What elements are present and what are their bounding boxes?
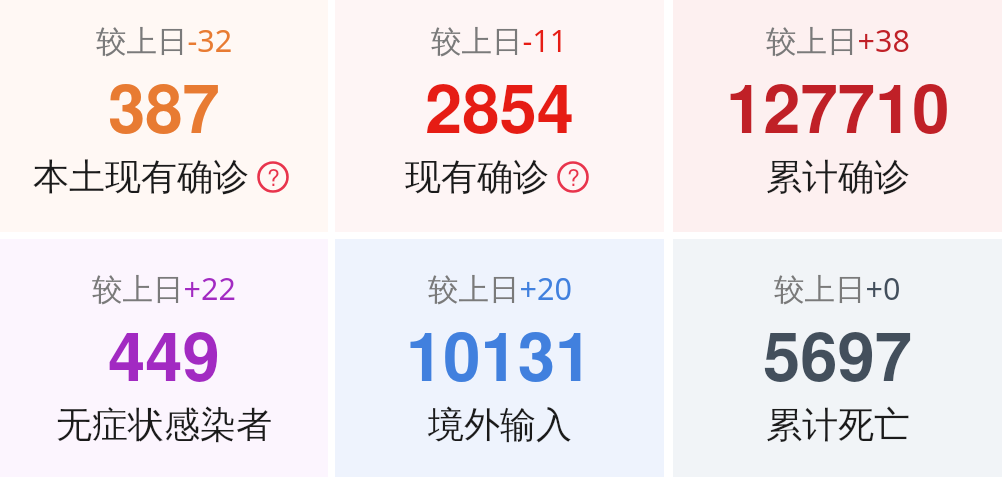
button[interactable]: 说明 Help — [257, 161, 289, 193]
staticText: 2854 — [425, 58, 575, 154]
staticText: 387 — [108, 58, 220, 154]
button[interactable]: 较上日-32 — [0, 0, 328, 232]
staticText: 较上日+0 — [774, 267, 901, 309]
staticText: 无症状感染者 — [56, 402, 272, 447]
staticText: 境外输入 — [428, 402, 572, 447]
staticText: ? — [267, 160, 280, 192]
staticText: 5697 — [763, 306, 913, 402]
staticText: 本土现有确诊 — [33, 154, 249, 199]
button[interactable]: 较上日+0 — [673, 239, 1002, 477]
staticText: 127710 — [726, 58, 950, 154]
staticText: 449 — [108, 306, 220, 402]
staticText: 10131 — [406, 306, 593, 402]
staticText: 较上日+22 — [92, 267, 236, 309]
button[interactable]: 较上日+22 — [0, 239, 328, 477]
staticText: 累计死亡 — [766, 402, 910, 447]
button[interactable]: 说明 Help — [557, 161, 589, 193]
staticText: 较上日-11 — [431, 19, 568, 61]
staticText: 较上日-32 — [96, 19, 233, 61]
button[interactable]: 较上日+38 — [673, 0, 1002, 232]
staticText: ? — [567, 160, 580, 192]
button[interactable]: 较上日+20 — [335, 239, 664, 477]
staticText: 现有确诊 — [405, 154, 549, 199]
button[interactable]: 较上日-11 — [335, 0, 664, 232]
staticText: 累计确诊 — [766, 154, 910, 199]
staticText: 较上日+38 — [766, 19, 910, 61]
staticText: 较上日+20 — [428, 267, 572, 309]
